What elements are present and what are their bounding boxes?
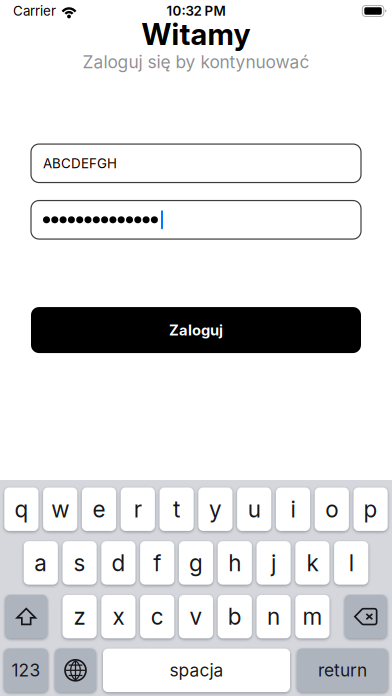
staticText: x bbox=[112, 603, 124, 630]
button[interactable]: Next keyboard bbox=[55, 648, 96, 692]
button[interactable]: p bbox=[353, 487, 388, 531]
button[interactable]: m bbox=[295, 595, 329, 638]
button[interactable]: c bbox=[140, 595, 174, 638]
staticText: 10:32 PM bbox=[166, 3, 225, 19]
button[interactable]: g bbox=[179, 541, 213, 585]
staticText: g bbox=[189, 549, 203, 576]
button[interactable]: t bbox=[159, 487, 194, 531]
button[interactable]: x bbox=[101, 595, 135, 638]
button[interactable]: v bbox=[179, 595, 213, 638]
button[interactable]: Delete bbox=[345, 595, 387, 638]
button[interactable]: Zaloguj bbox=[31, 307, 361, 353]
staticText: w bbox=[51, 496, 69, 522]
button[interactable]: w bbox=[43, 487, 77, 531]
button[interactable]: a bbox=[24, 541, 58, 585]
button[interactable]: q bbox=[4, 487, 38, 531]
button[interactable]: i bbox=[276, 487, 310, 531]
button[interactable]: e bbox=[82, 487, 116, 531]
staticText: t bbox=[173, 496, 180, 522]
staticText: c bbox=[151, 603, 164, 630]
button[interactable]: 123 bbox=[4, 648, 48, 692]
staticText: return bbox=[318, 660, 367, 680]
button[interactable]: u bbox=[237, 487, 271, 531]
button[interactable]: b bbox=[218, 595, 252, 638]
button[interactable]: y bbox=[198, 487, 232, 531]
staticText: spacja bbox=[169, 660, 223, 680]
button[interactable]: d bbox=[101, 541, 135, 585]
staticText: Zaloguj bbox=[169, 321, 223, 339]
staticText: ABCDEFGH bbox=[43, 155, 117, 171]
staticText: o bbox=[325, 496, 338, 522]
staticText: v bbox=[189, 603, 202, 630]
staticText: 123 bbox=[11, 660, 40, 680]
staticText: i bbox=[290, 496, 295, 522]
button[interactable]: h bbox=[218, 541, 252, 585]
button[interactable]: o bbox=[315, 487, 349, 531]
button[interactable]: return bbox=[297, 648, 388, 692]
staticText: n bbox=[267, 603, 280, 630]
staticText: Witamy bbox=[141, 17, 250, 52]
staticText: y bbox=[209, 496, 222, 522]
button[interactable]: k bbox=[295, 541, 329, 585]
button[interactable]: f bbox=[140, 541, 174, 585]
staticText: a bbox=[34, 549, 47, 576]
staticText: d bbox=[111, 549, 125, 576]
button[interactable]: l bbox=[334, 541, 368, 585]
button[interactable]: r bbox=[121, 487, 155, 531]
staticText: e bbox=[92, 496, 105, 522]
staticText: s bbox=[74, 549, 86, 576]
button[interactable]: s bbox=[62, 541, 97, 585]
staticText: Zaloguj się by kontynuować bbox=[82, 52, 309, 72]
button[interactable]: Shift bbox=[5, 595, 47, 638]
button[interactable]: n bbox=[256, 595, 291, 638]
staticText: q bbox=[14, 496, 28, 522]
staticText: Carrier bbox=[13, 3, 56, 19]
staticText: h bbox=[228, 549, 241, 576]
staticText: b bbox=[228, 603, 242, 630]
staticText: j bbox=[271, 549, 276, 576]
button[interactable]: spacja bbox=[103, 648, 290, 692]
staticText: z bbox=[74, 603, 86, 630]
staticText: u bbox=[248, 496, 261, 522]
staticText: p bbox=[364, 496, 378, 522]
staticText: l bbox=[349, 549, 354, 576]
staticText: r bbox=[134, 496, 142, 522]
button[interactable]: j bbox=[256, 541, 291, 585]
staticText: k bbox=[306, 549, 318, 576]
staticText: m bbox=[302, 603, 322, 630]
button[interactable]: z bbox=[62, 595, 97, 638]
staticText: f bbox=[153, 549, 161, 576]
